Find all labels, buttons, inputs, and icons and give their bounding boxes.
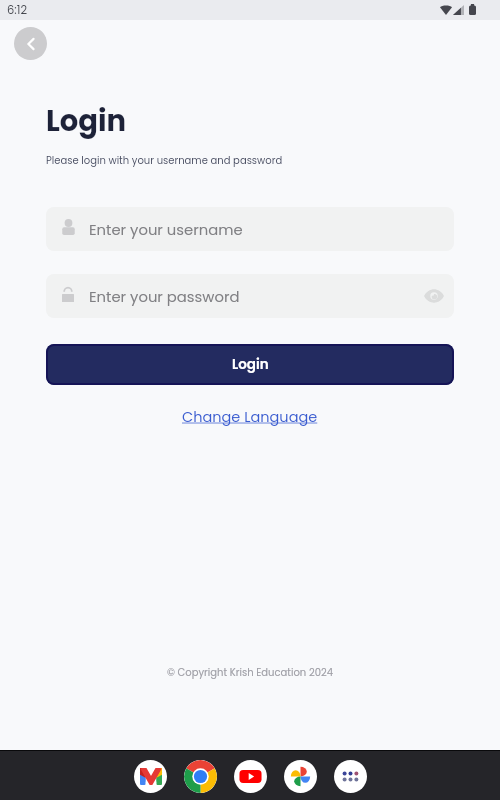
button[interactable]: Gmail [134, 760, 167, 793]
button[interactable]: Show password [417, 279, 451, 313]
staticText: 6:12 [7, 2, 28, 18]
button[interactable]: All apps [334, 760, 367, 793]
button[interactable]: Photos [284, 760, 317, 793]
staticText: Enter your password [89, 286, 240, 307]
staticText: Login [46, 101, 127, 142]
button[interactable]: Chrome [184, 760, 217, 793]
button[interactable]: Login [46, 344, 454, 385]
button[interactable]: Change Language [178, 404, 322, 430]
staticText: Please login with your username and pass… [46, 153, 283, 167]
staticText: Login [232, 355, 269, 374]
button[interactable]: YouTube [234, 760, 267, 793]
button[interactable]: Enter your password [46, 274, 454, 318]
staticText: Enter your username [89, 219, 243, 240]
staticText: © Copyright Krish Education 2024 [167, 665, 333, 679]
staticText: Change Language [182, 407, 318, 427]
button[interactable]: Enter your username [46, 207, 454, 251]
button[interactable]: Back [14, 27, 47, 60]
